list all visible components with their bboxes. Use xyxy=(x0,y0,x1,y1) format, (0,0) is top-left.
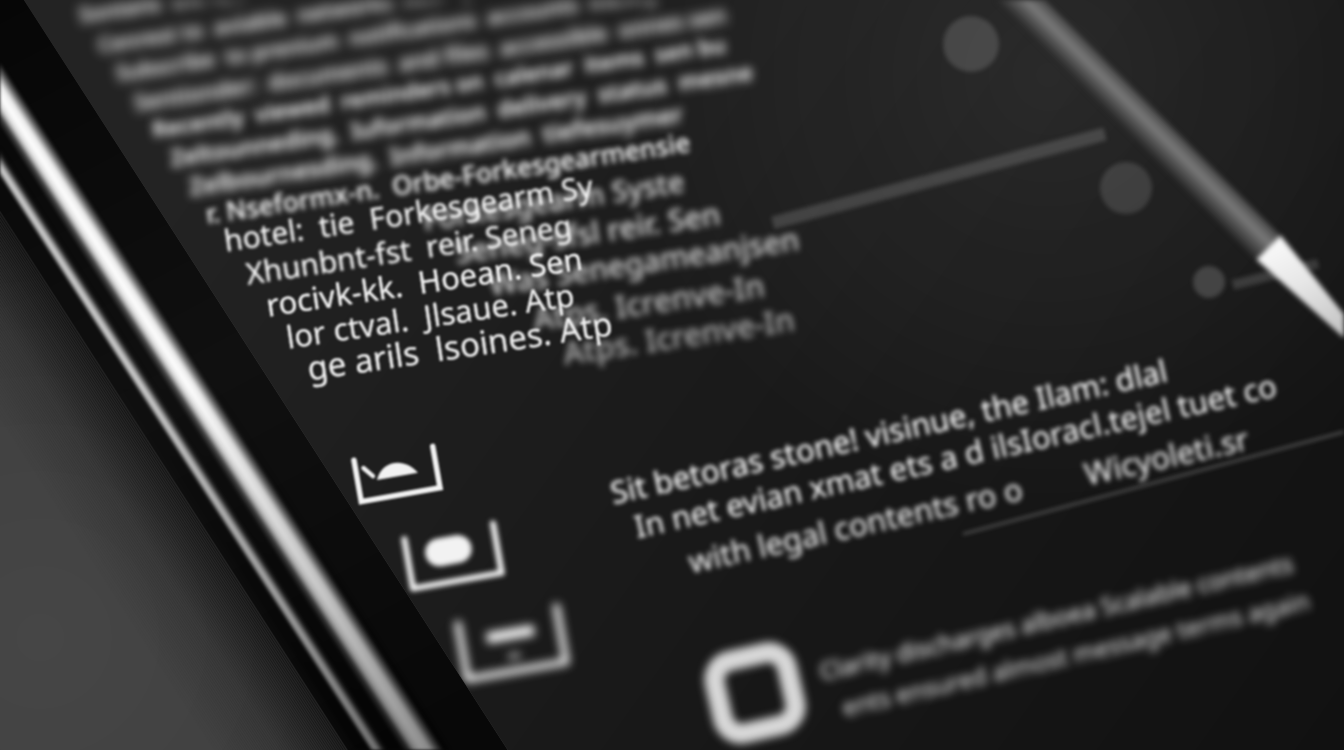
button[interactable]: Media library xyxy=(458,610,572,680)
button[interactable]: Messages xyxy=(404,526,508,590)
button[interactable]: Settings list xyxy=(60,0,780,410)
button[interactable]: Photos xyxy=(352,446,448,504)
button[interactable]: Clarity discharges alboea Scalable conte… xyxy=(710,600,1344,750)
button[interactable]: Sit betoras stone visinue, the Ilam xyxy=(596,440,1344,580)
button[interactable]: Phone screen xyxy=(0,0,1344,750)
